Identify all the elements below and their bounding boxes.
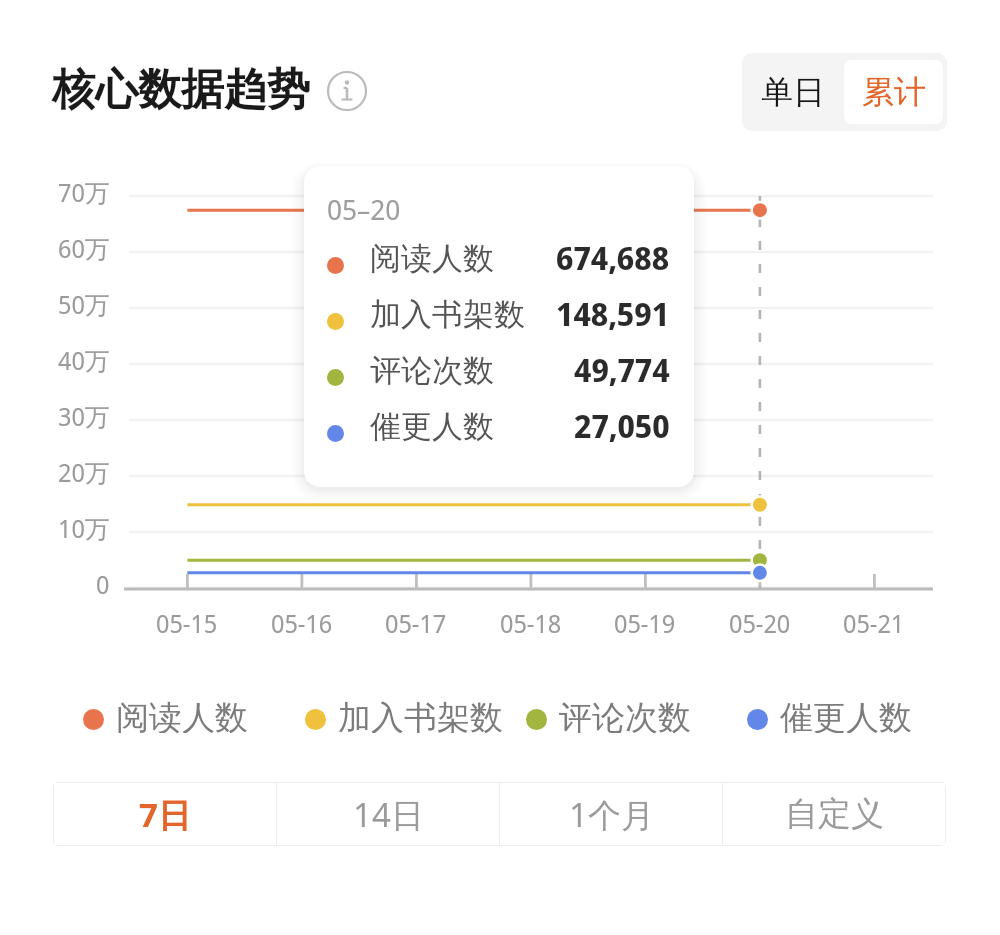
staticText: 加入书架数 (370, 295, 525, 334)
staticText: 05-17 (385, 606, 447, 640)
staticText: 评论次数 (559, 697, 691, 733)
button[interactable]: 自定义 (723, 783, 945, 845)
staticText: 674,688 (556, 236, 670, 280)
staticText: 7日 (139, 792, 191, 837)
staticText: 催更人数 (780, 697, 912, 733)
staticText: 05-16 (271, 606, 333, 640)
staticText: 05-18 (500, 606, 562, 640)
staticText: 40万 (58, 343, 110, 377)
staticText: 累计 (862, 72, 926, 112)
staticText: 14日 (353, 792, 424, 837)
button[interactable]: 催更人数 (747, 697, 912, 733)
button[interactable]: 单日 (742, 53, 844, 131)
button[interactable]: 1个月 (500, 783, 722, 845)
staticText: 单日 (761, 72, 825, 112)
button[interactable]: 阅读人数 (83, 697, 248, 733)
staticText: 05-19 (614, 606, 676, 640)
staticText: 1个月 (569, 792, 654, 837)
button[interactable]: 累计 (844, 60, 943, 124)
staticText: 0 (96, 567, 110, 601)
staticText: 评论次数 (370, 351, 494, 390)
button[interactable]: 7日 (54, 783, 276, 845)
staticText: 阅读人数 (370, 239, 494, 278)
button[interactable]: 说明 (327, 71, 367, 111)
staticText: 27,050 (574, 404, 670, 448)
staticText: 05–20 (327, 190, 401, 228)
staticText: 148,591 (556, 292, 670, 336)
staticText: 加入书架数 (338, 697, 503, 733)
staticText: 阅读人数 (116, 697, 248, 733)
staticText: 49,774 (574, 348, 670, 392)
button[interactable]: 14日 (277, 783, 499, 845)
staticText: 20万 (58, 455, 110, 489)
staticText: 自定义 (785, 793, 884, 835)
staticText: 10万 (58, 511, 110, 545)
button[interactable]: 评论次数 (526, 697, 691, 733)
button[interactable]: 加入书架数 (305, 697, 503, 733)
staticText: 催更人数 (370, 407, 494, 446)
staticText: 70万 (58, 175, 110, 209)
staticText: 30万 (58, 399, 110, 433)
staticText: 05-20 (729, 606, 791, 640)
staticText: 60万 (58, 231, 110, 265)
staticText: 05-15 (156, 606, 218, 640)
staticText: 05-21 (843, 606, 905, 640)
staticText: 50万 (58, 287, 110, 321)
staticText: 核心数据趋势 (52, 63, 310, 117)
